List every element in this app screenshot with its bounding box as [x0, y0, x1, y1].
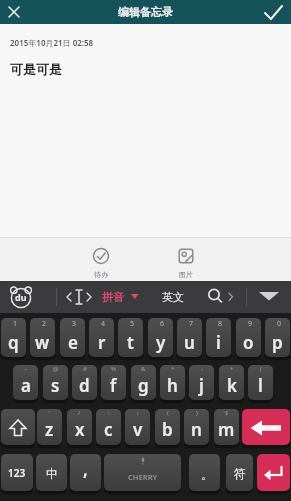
button[interactable]: CHERRY	[104, 454, 181, 492]
staticText: y	[156, 331, 166, 354]
staticText: j	[199, 374, 204, 397]
button[interactable]: '	[37, 409, 62, 446]
staticText: w	[35, 331, 50, 354]
button[interactable]: @	[43, 365, 68, 401]
button[interactable]: 2	[30, 318, 55, 358]
button[interactable]: 中	[36, 454, 67, 492]
button[interactable]: ;	[125, 409, 150, 446]
button[interactable]: 。	[189, 454, 220, 492]
staticText: z	[45, 418, 54, 441]
staticText: e	[68, 331, 78, 354]
button[interactable]	[64, 287, 94, 307]
staticText: 中	[46, 466, 58, 481]
staticText: 拼音	[102, 290, 124, 304]
staticText: f	[110, 374, 117, 397]
staticText: 编辑备忘录	[118, 5, 173, 19]
staticText: u	[184, 331, 195, 354]
button[interactable]: -	[189, 365, 214, 401]
button[interactable]: 1	[1, 318, 26, 358]
button[interactable]: *	[160, 365, 185, 401]
staticText: l	[258, 374, 263, 397]
staticText: &	[141, 365, 146, 373]
staticText: 8	[218, 319, 223, 329]
staticText: -	[201, 365, 203, 373]
staticText: /	[78, 409, 81, 417]
staticText: 9	[248, 319, 253, 329]
staticText: +	[230, 365, 234, 373]
staticText: a	[21, 374, 31, 397]
button[interactable]: 9	[236, 318, 261, 358]
staticText: *	[171, 365, 175, 373]
staticText: 6	[160, 319, 165, 329]
button[interactable]: 图片	[168, 245, 204, 279]
staticText: 可是可是	[10, 61, 62, 77]
button[interactable]: 123	[1, 454, 33, 492]
staticText: ,	[83, 458, 88, 481]
staticText: c	[104, 418, 113, 441]
staticText: t	[127, 331, 134, 354]
button[interactable]: 符	[226, 454, 253, 492]
button[interactable]: $	[214, 409, 239, 446]
button[interactable]	[204, 285, 240, 309]
button[interactable]: %	[101, 365, 126, 401]
staticText: 符	[234, 466, 246, 481]
button[interactable]: 英文	[155, 281, 191, 313]
staticText: p	[272, 331, 283, 354]
staticText: h	[167, 374, 178, 397]
button[interactable]: 3	[60, 318, 85, 358]
button[interactable]: ~	[13, 365, 38, 401]
button[interactable]: /	[67, 409, 92, 446]
staticText: CHERRY	[128, 472, 158, 482]
button[interactable]	[254, 281, 286, 313]
staticText: 。	[201, 467, 213, 482]
staticText: 待办	[94, 270, 108, 279]
staticText: du	[15, 291, 27, 303]
staticText: q	[8, 331, 19, 354]
button[interactable]: 6	[148, 318, 173, 358]
staticText: b	[162, 418, 173, 441]
button[interactable]: ,	[70, 454, 101, 492]
staticText: @	[53, 365, 59, 373]
button[interactable]: )	[184, 409, 209, 446]
button[interactable]: 0	[265, 318, 290, 358]
button[interactable]: :	[96, 409, 121, 446]
staticText: i	[216, 331, 221, 354]
button[interactable]	[1, 409, 35, 446]
button[interactable]: &	[131, 365, 156, 401]
staticText: 4	[101, 319, 106, 329]
button[interactable]: 待办	[83, 245, 119, 279]
staticText: g	[138, 374, 149, 397]
button[interactable]: #	[72, 365, 97, 401]
button[interactable]: (	[248, 365, 273, 401]
button[interactable]	[242, 409, 290, 446]
staticText: )	[196, 409, 198, 417]
staticText: o	[243, 331, 254, 354]
staticText: ;	[137, 409, 139, 417]
button[interactable]: 拼音	[102, 281, 146, 313]
staticText: d	[79, 374, 90, 397]
staticText: '	[49, 409, 51, 417]
staticText: 2	[42, 319, 47, 329]
staticText: s	[51, 374, 60, 397]
button[interactable]: 7	[177, 318, 202, 358]
staticText: 1	[13, 319, 18, 329]
staticText: (	[260, 365, 262, 373]
button[interactable]: (	[155, 409, 180, 446]
button[interactable]	[257, 454, 290, 492]
staticText: 英文	[162, 290, 184, 304]
button[interactable]: 8	[206, 318, 231, 358]
staticText: k	[227, 374, 237, 397]
button[interactable]: +	[219, 365, 244, 401]
staticText: 5	[130, 319, 135, 329]
button[interactable]	[263, 1, 285, 23]
button[interactable]: 4	[89, 318, 114, 358]
staticText: 3	[72, 319, 77, 329]
button[interactable]	[4, 2, 24, 22]
button[interactable]: du	[8, 285, 34, 309]
staticText: v	[133, 418, 143, 441]
button[interactable]: 5	[118, 318, 143, 358]
staticText: 0	[277, 319, 282, 329]
staticText: m	[218, 418, 235, 441]
staticText: #	[83, 365, 87, 373]
staticText: 7	[189, 319, 194, 329]
